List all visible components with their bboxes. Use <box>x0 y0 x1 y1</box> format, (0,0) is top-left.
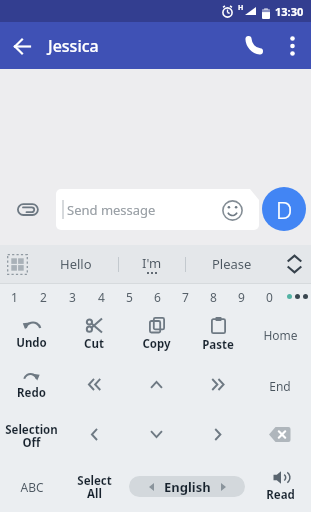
staticText: 7 <box>182 289 189 305</box>
staticText: 8 <box>210 289 217 305</box>
button[interactable]: ABC <box>0 461 63 512</box>
button[interactable]: Read <box>249 461 311 512</box>
button[interactable] <box>0 245 34 283</box>
staticText: 6 <box>154 289 161 305</box>
staticText: ABC <box>20 479 44 495</box>
button[interactable]: Redo <box>0 360 63 411</box>
button[interactable]: 0 <box>255 284 283 309</box>
button[interactable]: Home <box>249 309 311 360</box>
staticText: 13:30 <box>275 4 304 19</box>
button[interactable] <box>0 24 44 68</box>
button[interactable]: D <box>262 187 306 231</box>
button[interactable] <box>63 360 125 411</box>
button[interactable]: 7 <box>171 284 199 309</box>
button[interactable] <box>283 284 311 309</box>
staticText: 9 <box>238 289 245 305</box>
staticText: H <box>238 3 244 13</box>
button[interactable]: 8 <box>199 284 227 309</box>
staticText: 0 <box>266 289 273 305</box>
button[interactable]: Hello <box>34 245 118 283</box>
staticText: Please <box>212 255 252 273</box>
staticText: Copy <box>142 336 171 352</box>
button[interactable]: 2 <box>29 284 58 309</box>
staticText: Jessica <box>48 35 99 57</box>
button[interactable] <box>125 360 187 411</box>
button[interactable] <box>187 411 249 461</box>
staticText: Send message <box>67 201 156 219</box>
button[interactable]: 5 <box>115 284 143 309</box>
staticText: Redo <box>17 385 46 401</box>
staticText: I'm <box>142 254 162 272</box>
button[interactable]: 3 <box>58 284 87 309</box>
staticText: Hello <box>60 255 92 273</box>
button[interactable]: Send message <box>56 189 259 230</box>
button[interactable]: End <box>249 360 311 411</box>
staticText: D <box>276 194 293 225</box>
button[interactable]: Please <box>186 245 277 283</box>
staticText: Read <box>266 487 295 503</box>
staticText: Home <box>263 327 298 343</box>
staticText: End <box>269 378 291 394</box>
button[interactable]: 4 <box>87 284 115 309</box>
staticText: Paste <box>202 337 234 353</box>
staticText: Cut <box>84 336 104 352</box>
button[interactable] <box>220 198 244 222</box>
button[interactable]: English <box>129 476 245 497</box>
staticText: 2 <box>40 289 47 305</box>
button[interactable] <box>233 22 275 69</box>
button[interactable] <box>277 245 311 283</box>
staticText: 3 <box>69 289 76 305</box>
staticText: 5 <box>126 289 133 305</box>
staticText: English <box>164 478 211 496</box>
button[interactable]: 6 <box>143 284 171 309</box>
button[interactable]: Undo <box>0 309 63 360</box>
button[interactable]: 1 <box>0 284 29 309</box>
staticText: Selection Off <box>5 422 58 450</box>
staticText: Select All <box>77 473 112 501</box>
button[interactable]: Cut <box>63 309 125 360</box>
button[interactable]: Paste <box>187 309 249 360</box>
button[interactable] <box>63 411 125 461</box>
button[interactable] <box>275 22 309 69</box>
button[interactable]: Copy <box>125 309 187 360</box>
button[interactable] <box>187 360 249 411</box>
staticText: 1 <box>11 289 18 305</box>
button[interactable] <box>125 411 187 461</box>
button[interactable]: Selection Off <box>0 411 63 461</box>
button[interactable]: Select All <box>63 461 125 512</box>
staticText: Undo <box>16 335 47 351</box>
staticText: 4 <box>98 289 105 305</box>
button[interactable] <box>249 411 311 461</box>
button[interactable]: I'm <box>119 245 185 283</box>
button[interactable]: 9 <box>227 284 255 309</box>
button[interactable] <box>0 189 56 230</box>
